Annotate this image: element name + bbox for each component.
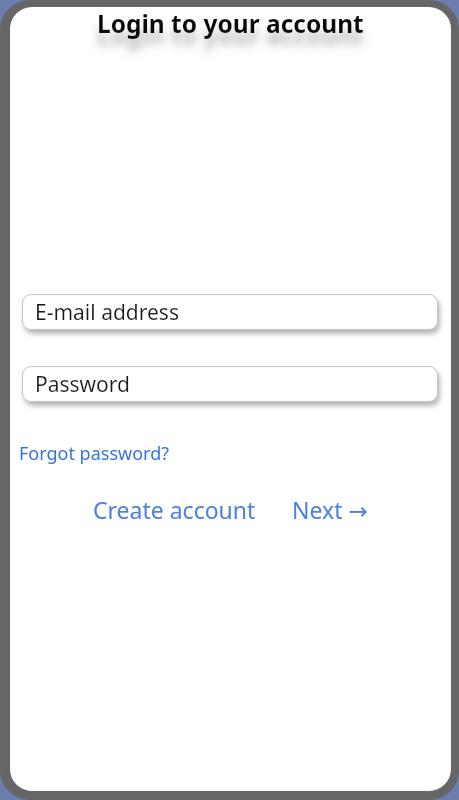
button[interactable]: E-mail address bbox=[22, 294, 438, 330]
staticText: Login to your account bbox=[97, 7, 364, 40]
button[interactable]: Next → bbox=[292, 494, 368, 525]
button[interactable]: Password bbox=[22, 366, 438, 402]
button[interactable]: Forgot password? bbox=[19, 441, 170, 466]
button[interactable]: Create account bbox=[93, 494, 256, 525]
staticText: Password bbox=[35, 370, 130, 399]
staticText: E-mail address bbox=[35, 298, 179, 327]
